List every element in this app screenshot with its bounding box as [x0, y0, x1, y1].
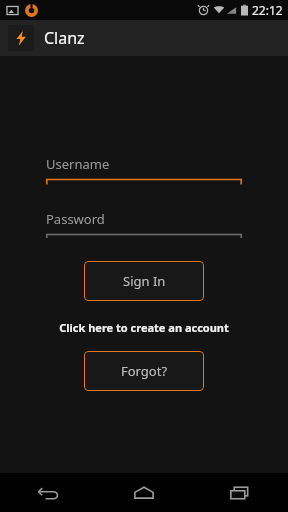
button[interactable]: Click here to create an account [0, 320, 288, 335]
button[interactable]: Recent apps [192, 473, 288, 512]
button[interactable]: Home [96, 473, 192, 512]
staticText: Password [46, 210, 105, 228]
button[interactable]: Forgot? [84, 351, 204, 391]
button[interactable]: Sign In [84, 261, 204, 301]
staticText: 22:12 [252, 2, 283, 18]
staticText: Forgot? [121, 362, 168, 380]
button[interactable]: Back [0, 473, 96, 512]
staticText: Clanz [44, 27, 85, 49]
staticText: Sign In [123, 272, 166, 290]
staticText: Click here to create an account [59, 320, 229, 335]
staticText: Username [46, 155, 110, 173]
